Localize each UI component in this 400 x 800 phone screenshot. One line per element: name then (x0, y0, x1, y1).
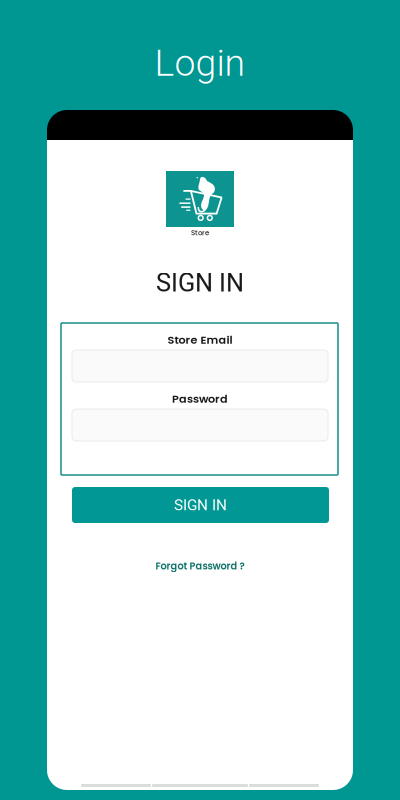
staticText: Login (154, 41, 245, 85)
staticText: SIGN IN (156, 268, 244, 298)
staticText: SIGN IN (174, 496, 227, 514)
staticText: Store Email (167, 332, 232, 348)
button[interactable]: Forgot Password ? (120, 556, 280, 576)
staticText: Forgot Password ? (155, 559, 244, 573)
staticText: Password (172, 391, 228, 407)
staticText: Store (191, 228, 209, 238)
button[interactable]: SIGN IN (72, 487, 329, 523)
